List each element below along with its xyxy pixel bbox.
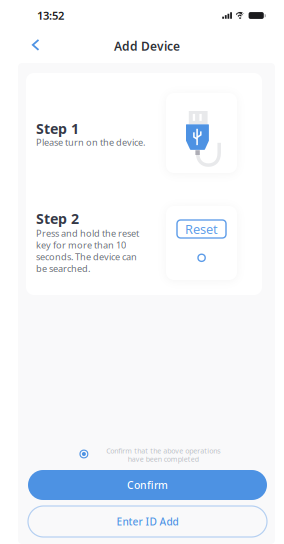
button[interactable]: Confirm — [28, 470, 267, 500]
staticText: 13:52 — [37, 8, 64, 23]
button[interactable]: Back — [0, 31, 56, 60]
staticText: Confirm that the above operations have b… — [106, 446, 220, 464]
staticText: Step 2 — [36, 209, 79, 228]
staticText: Step 1 — [36, 119, 79, 138]
staticText: Confirm — [127, 478, 168, 492]
staticText: Reset — [185, 220, 218, 238]
staticText: Please turn on the device. — [36, 136, 145, 148]
staticText: Enter ID Add — [116, 515, 178, 528]
staticText: Press and hold the reset key for more th… — [36, 227, 139, 275]
staticText: Add Device — [114, 38, 180, 54]
button[interactable]: Confirm operations completed — [75, 445, 93, 463]
button[interactable]: Enter ID Add — [28, 506, 267, 537]
